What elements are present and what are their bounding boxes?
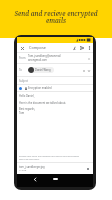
staticText: Daniel Wong	[35, 68, 51, 72]
button[interactable]: Add contact	[81, 68, 86, 73]
staticText: tom_j.sandberger.jpg	[19, 165, 45, 169]
staticText: anongmail.com	[28, 58, 47, 62]
button[interactable]: Home	[44, 175, 66, 182]
staticText: Tom.j.sandberg@anonmail	[28, 54, 61, 58]
staticText: with PGP key pairs.	[19, 158, 40, 161]
button[interactable]: Send	[78, 44, 86, 52]
staticText: Emails sent from this address are end-to…	[19, 155, 79, 158]
button[interactable]: Back	[31, 176, 38, 183]
staticText: Encryption enabled	[28, 86, 52, 90]
staticText: Send and recieve encrypted emails	[14, 9, 98, 25]
staticText: From	[19, 56, 26, 60]
button[interactable]: Show Cc and Bcc	[86, 68, 91, 73]
staticText: Here is the document we talked about.	[19, 101, 67, 105]
button[interactable]: Daniel Wong	[28, 67, 51, 73]
staticText: Subject	[19, 79, 28, 83]
button[interactable]: More options	[86, 44, 93, 51]
staticText: Best regards,	[19, 107, 36, 111]
button[interactable]: Expand from	[86, 56, 91, 61]
staticText: Compose	[29, 45, 46, 50]
button[interactable]: Remove attachment	[85, 166, 91, 172]
staticText: Tom	[19, 111, 25, 115]
button[interactable]: Attach file	[70, 44, 78, 52]
staticText: 112 kB	[19, 169, 27, 172]
button[interactable]: Close	[18, 44, 26, 52]
staticText: Hello Daniel,	[19, 94, 35, 98]
staticText: To	[19, 68, 22, 72]
